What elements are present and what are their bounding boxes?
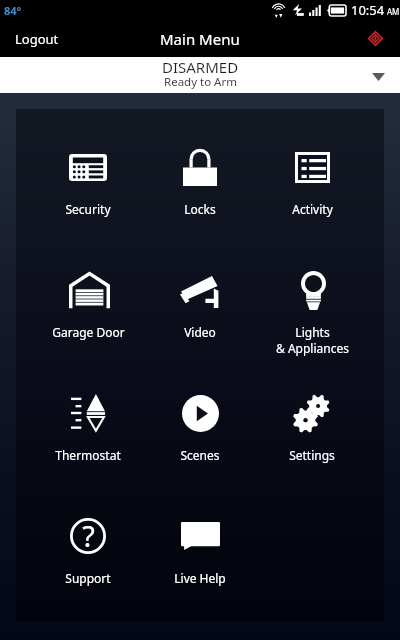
staticText: ? [82, 516, 95, 555]
staticText: AM [387, 6, 400, 17]
staticText: Support [65, 570, 111, 586]
button[interactable]: DISARMED [0, 57, 400, 93]
staticText: 84° [4, 3, 22, 18]
other: Expand status [360, 57, 400, 93]
button[interactable]: Thermostat [32, 369, 144, 492]
button[interactable]: Scenes [144, 369, 256, 492]
staticText: Live Help [174, 570, 226, 586]
button[interactable]: Activity [256, 123, 368, 246]
button[interactable]: Video [144, 246, 256, 369]
button[interactable]: Garage Door [32, 246, 144, 369]
button[interactable]: Security [32, 123, 144, 246]
staticText: Video [184, 324, 216, 340]
staticText: Settings [289, 447, 335, 463]
staticText: Locks [184, 201, 216, 217]
staticText: & Appliances [276, 340, 349, 356]
staticText: DISARMED [162, 57, 239, 77]
staticText: Garage Door [52, 324, 125, 340]
staticText: Security [65, 201, 111, 217]
button[interactable]: Lights [256, 246, 368, 369]
staticText: Activity [292, 201, 333, 217]
button[interactable]: Live Help [144, 492, 256, 615]
button[interactable]: Panic alarm [356, 20, 400, 57]
button[interactable]: ? [32, 492, 144, 615]
staticText: Ready to Arm [164, 74, 237, 90]
button[interactable]: Locks [144, 123, 256, 246]
staticText: Scenes [180, 447, 220, 463]
staticText: Lights [295, 324, 330, 340]
button[interactable]: Settings [256, 369, 368, 492]
staticText: Main Menu [160, 29, 240, 49]
button[interactable]: Logout [0, 20, 400, 57]
staticText: Thermostat [55, 447, 121, 463]
staticText: 10:54 [351, 1, 385, 19]
staticText: Logout [15, 30, 59, 48]
